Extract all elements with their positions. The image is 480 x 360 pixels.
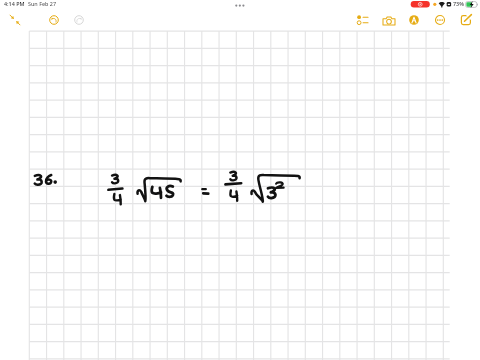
button[interactable]: More options (430, 10, 450, 30)
button[interactable]: Undo (45, 11, 63, 29)
staticText: 4:14 PM (4, 0, 25, 7)
button[interactable]: Collapse (5, 10, 25, 30)
staticText: Sun Feb 27 (28, 0, 56, 7)
button[interactable]: Outline (352, 10, 372, 30)
button[interactable]: New note (456, 10, 476, 30)
staticText: 73% (453, 0, 464, 7)
button[interactable]: Insert photo (379, 11, 399, 31)
button[interactable]: Redo (70, 11, 88, 29)
button[interactable]: Text style (404, 10, 424, 30)
